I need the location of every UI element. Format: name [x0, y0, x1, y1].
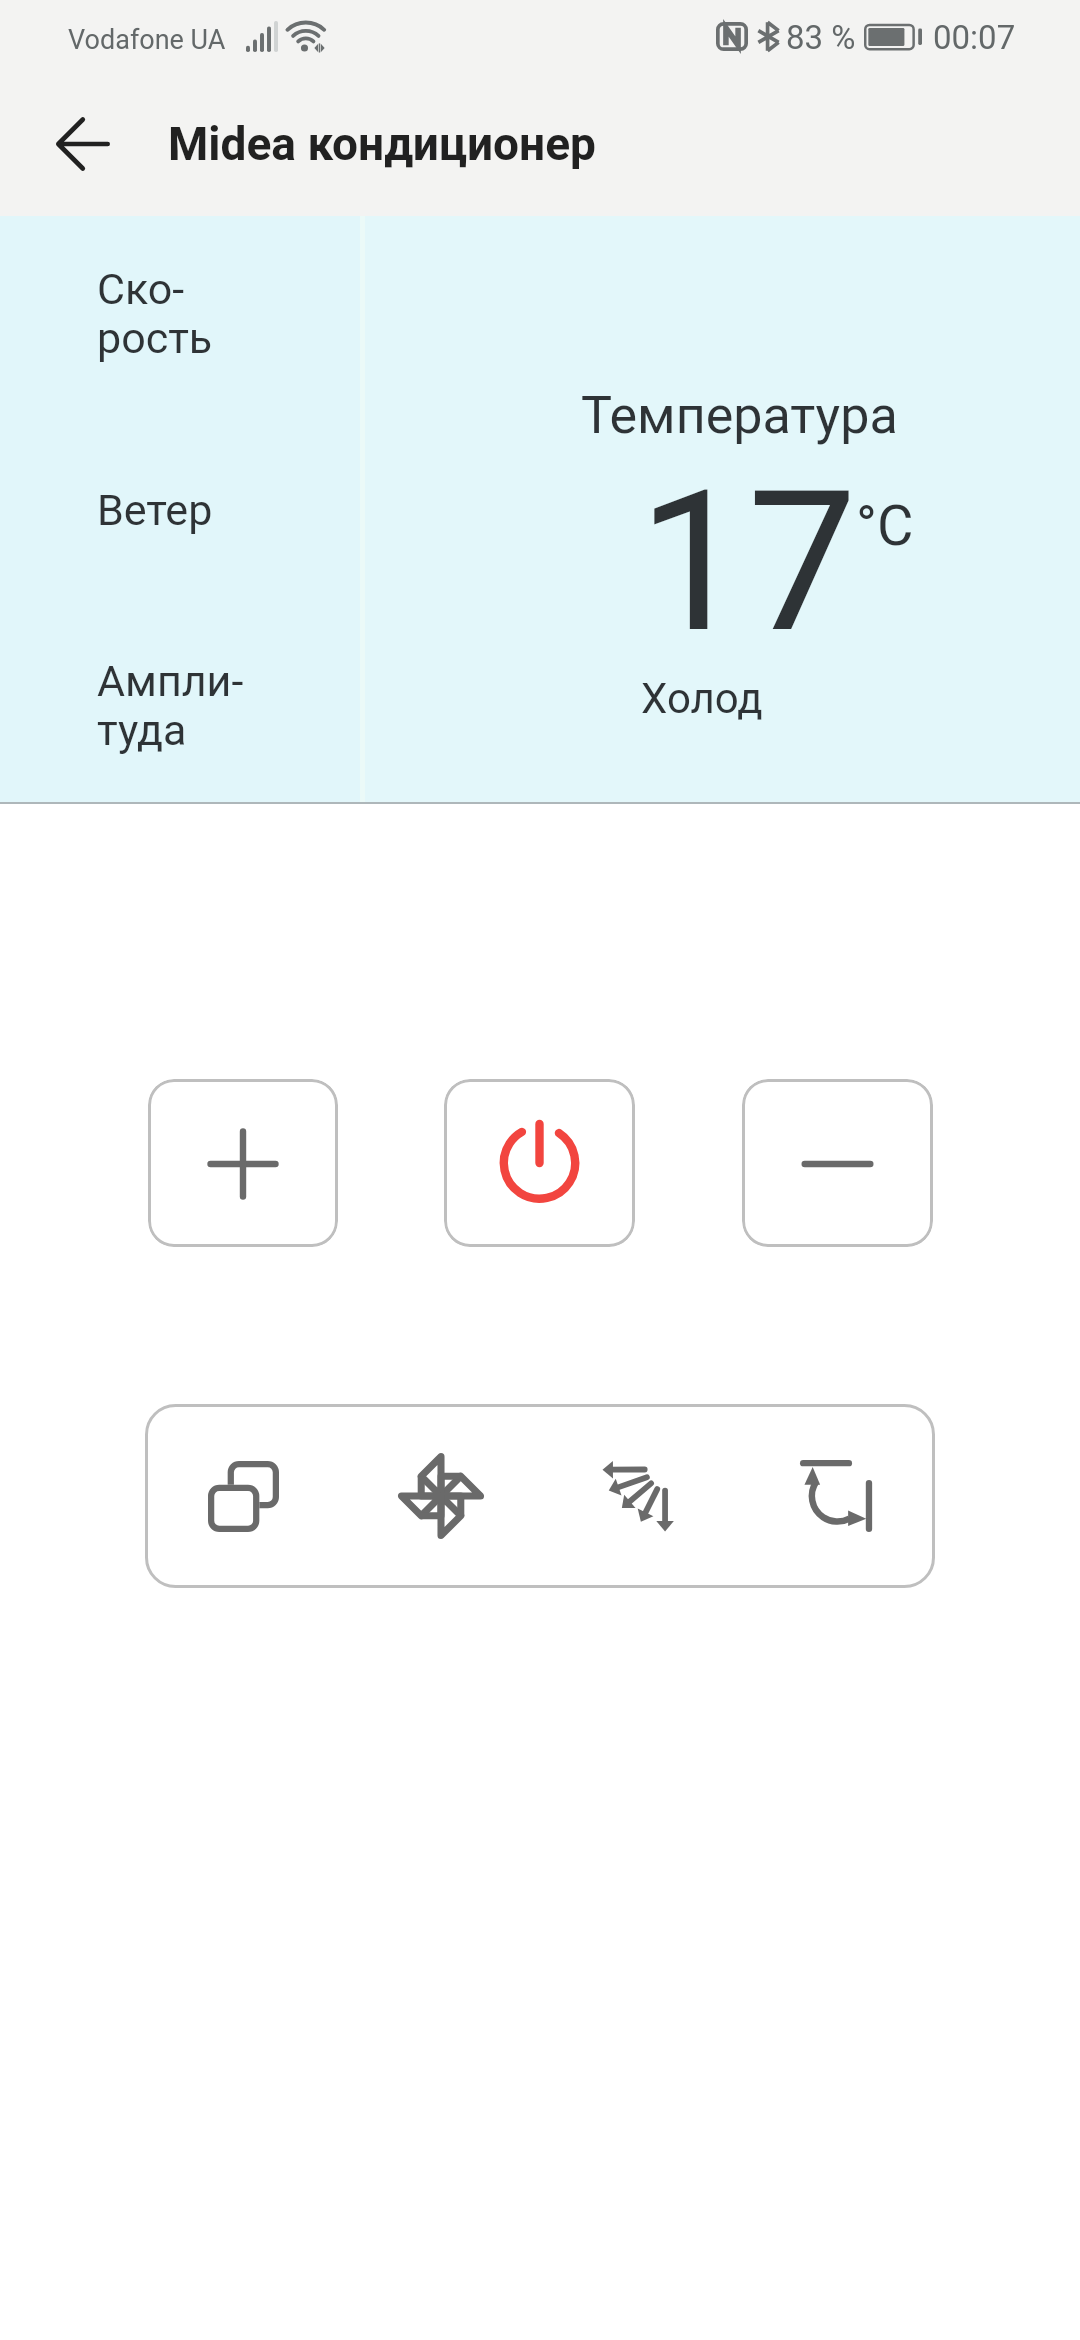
staticText: 83 % — [786, 18, 856, 57]
button[interactable]: Back — [28, 89, 138, 199]
button[interactable]: Swing direction — [539, 1404, 737, 1588]
button[interactable] — [365, 216, 1080, 802]
staticText: 00:07 — [933, 18, 1016, 57]
staticText: Холод — [641, 674, 763, 723]
button[interactable]: Ветер — [0, 435, 360, 605]
staticText: Vodafone UA — [68, 24, 226, 56]
button[interactable]: Power — [444, 1079, 635, 1247]
staticText: Ампли- туда — [97, 656, 244, 755]
button[interactable]: Oscillate — [737, 1404, 935, 1588]
staticText: Температура — [581, 385, 898, 446]
button[interactable]: Decrease temperature — [742, 1079, 933, 1247]
staticText: Ветер — [97, 485, 213, 535]
staticText: Ско- рость — [97, 264, 213, 363]
staticText: 17 — [638, 448, 858, 677]
button[interactable]: Ампли- туда — [0, 606, 360, 802]
staticText: Midea кондиционер — [168, 117, 596, 171]
button[interactable]: Increase temperature — [148, 1079, 338, 1247]
button[interactable]: Mode — [145, 1404, 342, 1588]
button[interactable]: Ско- рость — [0, 216, 360, 411]
button[interactable]: Fan speed — [342, 1404, 539, 1588]
staticText: °C — [856, 493, 914, 559]
